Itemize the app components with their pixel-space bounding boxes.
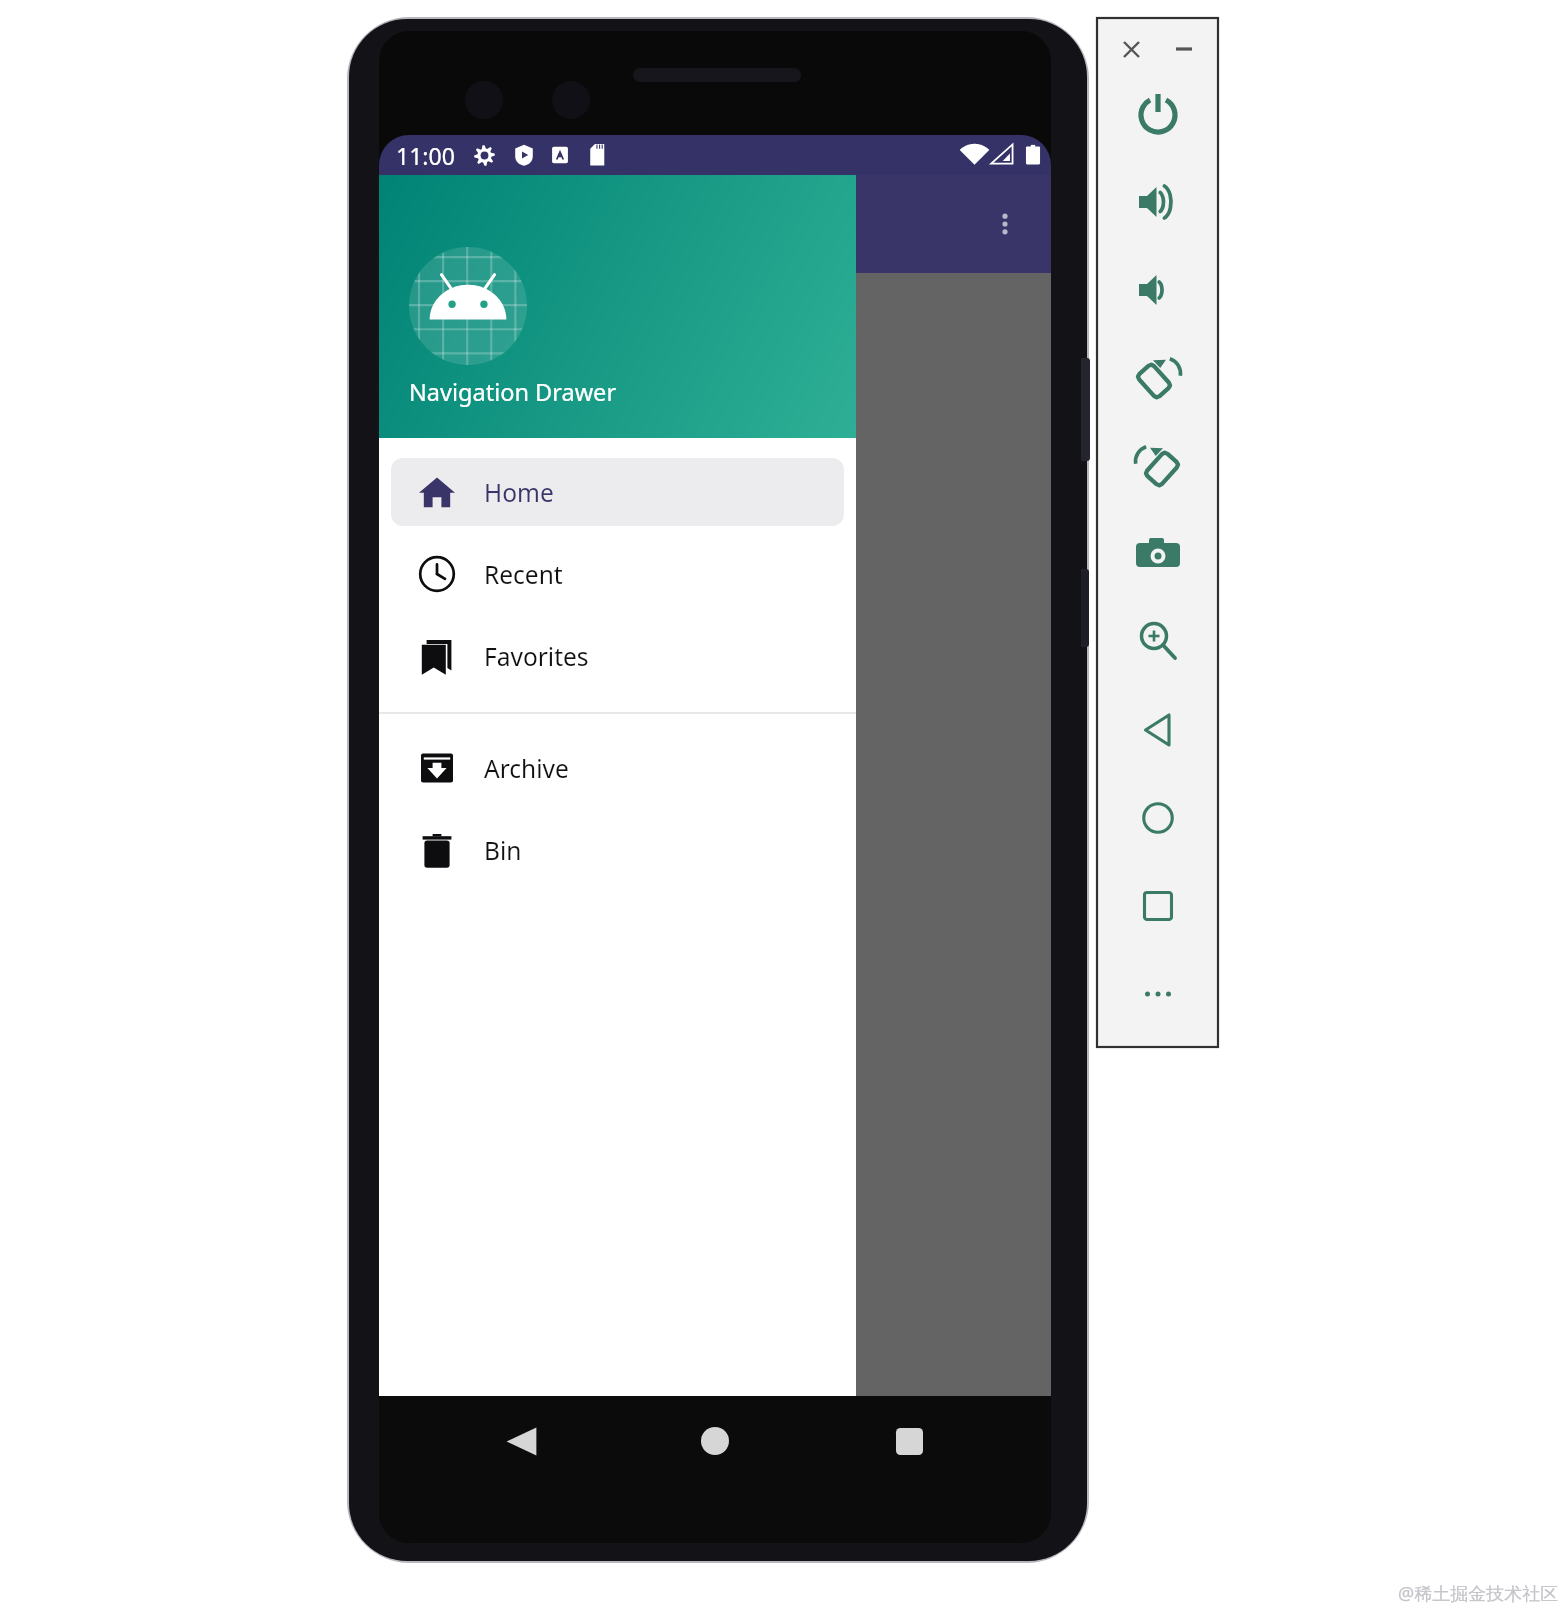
button[interactable]: Volume down [1097,246,1218,334]
staticText: 11:00 [396,140,455,171]
button[interactable]: Volume up [1097,158,1218,246]
button[interactable]: More options [979,198,1031,250]
button[interactable]: Screenshot [1097,510,1218,598]
button[interactable]: Back [489,1396,553,1486]
button[interactable]: Home [683,1396,747,1486]
button[interactable]: Home [1097,774,1218,862]
button[interactable]: Favorites [391,622,844,690]
button[interactable]: Overview [1097,862,1218,950]
button[interactable]: Minimize [1164,29,1204,69]
button[interactable]: Zoom [1097,598,1218,686]
staticText: @稀土掘金技术社区 [1398,1581,1559,1606]
staticText: Archive [484,752,569,785]
staticText: Bin [484,834,522,867]
button[interactable]: Bin [391,816,844,884]
button[interactable]: Rotate left [1097,334,1218,422]
staticText: Navigation Drawer [409,376,617,408]
staticText: Favorites [484,640,589,673]
staticText: Home [484,476,554,509]
button[interactable]: Rotate right [1097,422,1218,510]
button[interactable]: Power [1097,70,1218,158]
button[interactable]: Close [1111,29,1151,69]
button[interactable]: More [1097,950,1218,1038]
button[interactable]: Recent [391,540,844,608]
staticText: Recent [484,558,563,591]
button[interactable]: Home [391,458,844,526]
button[interactable]: Back [1097,686,1218,774]
button[interactable]: Recents [877,1396,941,1486]
button[interactable]: Archive [391,734,844,802]
